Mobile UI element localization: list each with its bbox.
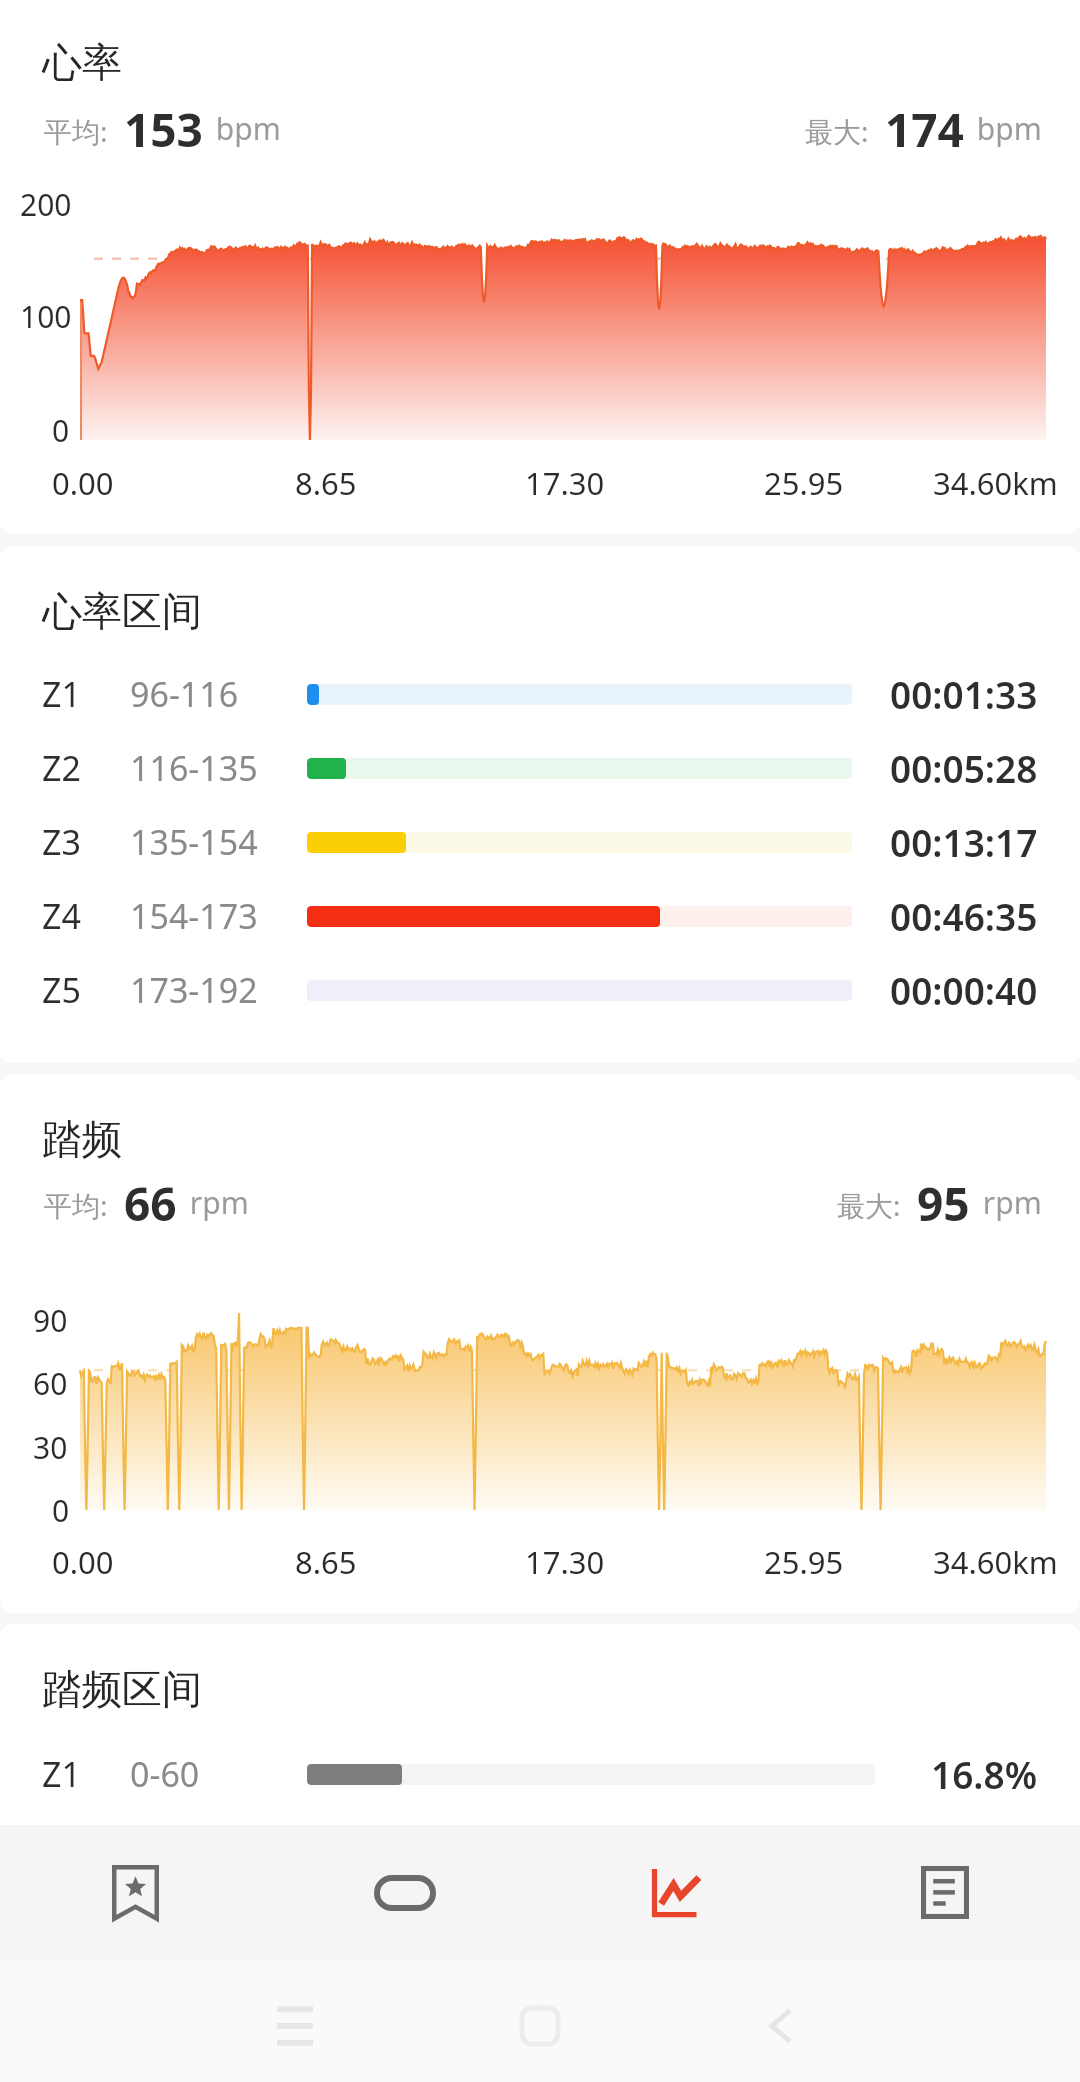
staticText: 95: [917, 1172, 970, 1228]
staticText: 30: [33, 1427, 68, 1468]
staticText: rpm: [182, 1182, 249, 1223]
staticText: 34.60km: [933, 1541, 1058, 1583]
staticText: 最大:: [837, 1186, 908, 1224]
staticText: 200: [20, 184, 72, 225]
staticText: 153: [124, 98, 203, 154]
button[interactable]: Back: [733, 1978, 829, 2074]
staticText: 00:05:28: [890, 743, 1038, 793]
staticText: 平均:: [44, 112, 115, 150]
staticText: 心率: [42, 37, 122, 87]
staticText: Z4: [42, 893, 81, 939]
staticText: 0: [52, 410, 70, 451]
staticText: Z5: [42, 967, 81, 1013]
button[interactable]: Z5: [0, 953, 1080, 1027]
button[interactable]: Z2: [0, 731, 1080, 805]
staticText: 17.30: [525, 462, 605, 504]
staticText: 最大:: [805, 112, 876, 150]
staticText: 8.65: [295, 462, 357, 504]
button[interactable]: Z1: [0, 657, 1080, 731]
button[interactable]: Z4: [0, 879, 1080, 953]
staticText: 90: [33, 1300, 68, 1341]
staticText: bpm: [208, 108, 281, 149]
staticText: Z2: [42, 745, 81, 791]
staticText: 34.60km: [933, 462, 1058, 504]
staticText: 66: [124, 1172, 177, 1228]
staticText: 0: [52, 1490, 70, 1531]
button[interactable]: Charts: [540, 1825, 810, 1960]
staticText: 00:01:33: [890, 669, 1038, 719]
staticText: 00:13:17: [890, 817, 1038, 867]
staticText: 00:00:40: [890, 965, 1038, 1015]
button[interactable]: Route: [270, 1825, 540, 1960]
staticText: rpm: [975, 1182, 1042, 1223]
staticText: 00:46:35: [890, 891, 1038, 941]
staticText: 心率区间: [42, 586, 202, 636]
staticText: 踏频: [42, 1114, 122, 1164]
button[interactable]: Bookmarks: [0, 1825, 270, 1960]
staticText: 0-60: [130, 1751, 200, 1797]
staticText: 17.30: [525, 1541, 605, 1583]
staticText: 踏频区间: [42, 1664, 202, 1714]
staticText: 0.00: [52, 462, 114, 504]
staticText: 60: [33, 1363, 68, 1404]
staticText: bpm: [969, 108, 1042, 149]
staticText: 154-173: [130, 893, 258, 939]
staticText: 96-116: [130, 671, 239, 717]
staticText: 25.95: [764, 1541, 844, 1583]
staticText: Z3: [42, 819, 81, 865]
button[interactable]: Details: [810, 1825, 1080, 1960]
button[interactable]: Home: [492, 1978, 588, 2074]
staticText: 173-192: [130, 967, 258, 1013]
staticText: 116-135: [130, 745, 258, 791]
staticText: 25.95: [764, 462, 844, 504]
staticText: 135-154: [130, 819, 258, 865]
staticText: 174: [885, 98, 964, 154]
staticText: 0.00: [52, 1541, 114, 1583]
staticText: 16.8%: [931, 1749, 1038, 1799]
button[interactable]: Recents: [247, 1978, 343, 2074]
staticText: 100: [20, 296, 72, 337]
staticText: 8.65: [295, 1541, 357, 1583]
staticText: Z1: [42, 1751, 81, 1797]
staticText: Z1: [42, 671, 81, 717]
button[interactable]: Z3: [0, 805, 1080, 879]
staticText: 平均:: [44, 1186, 115, 1224]
button[interactable]: Z1: [0, 1737, 1080, 1811]
